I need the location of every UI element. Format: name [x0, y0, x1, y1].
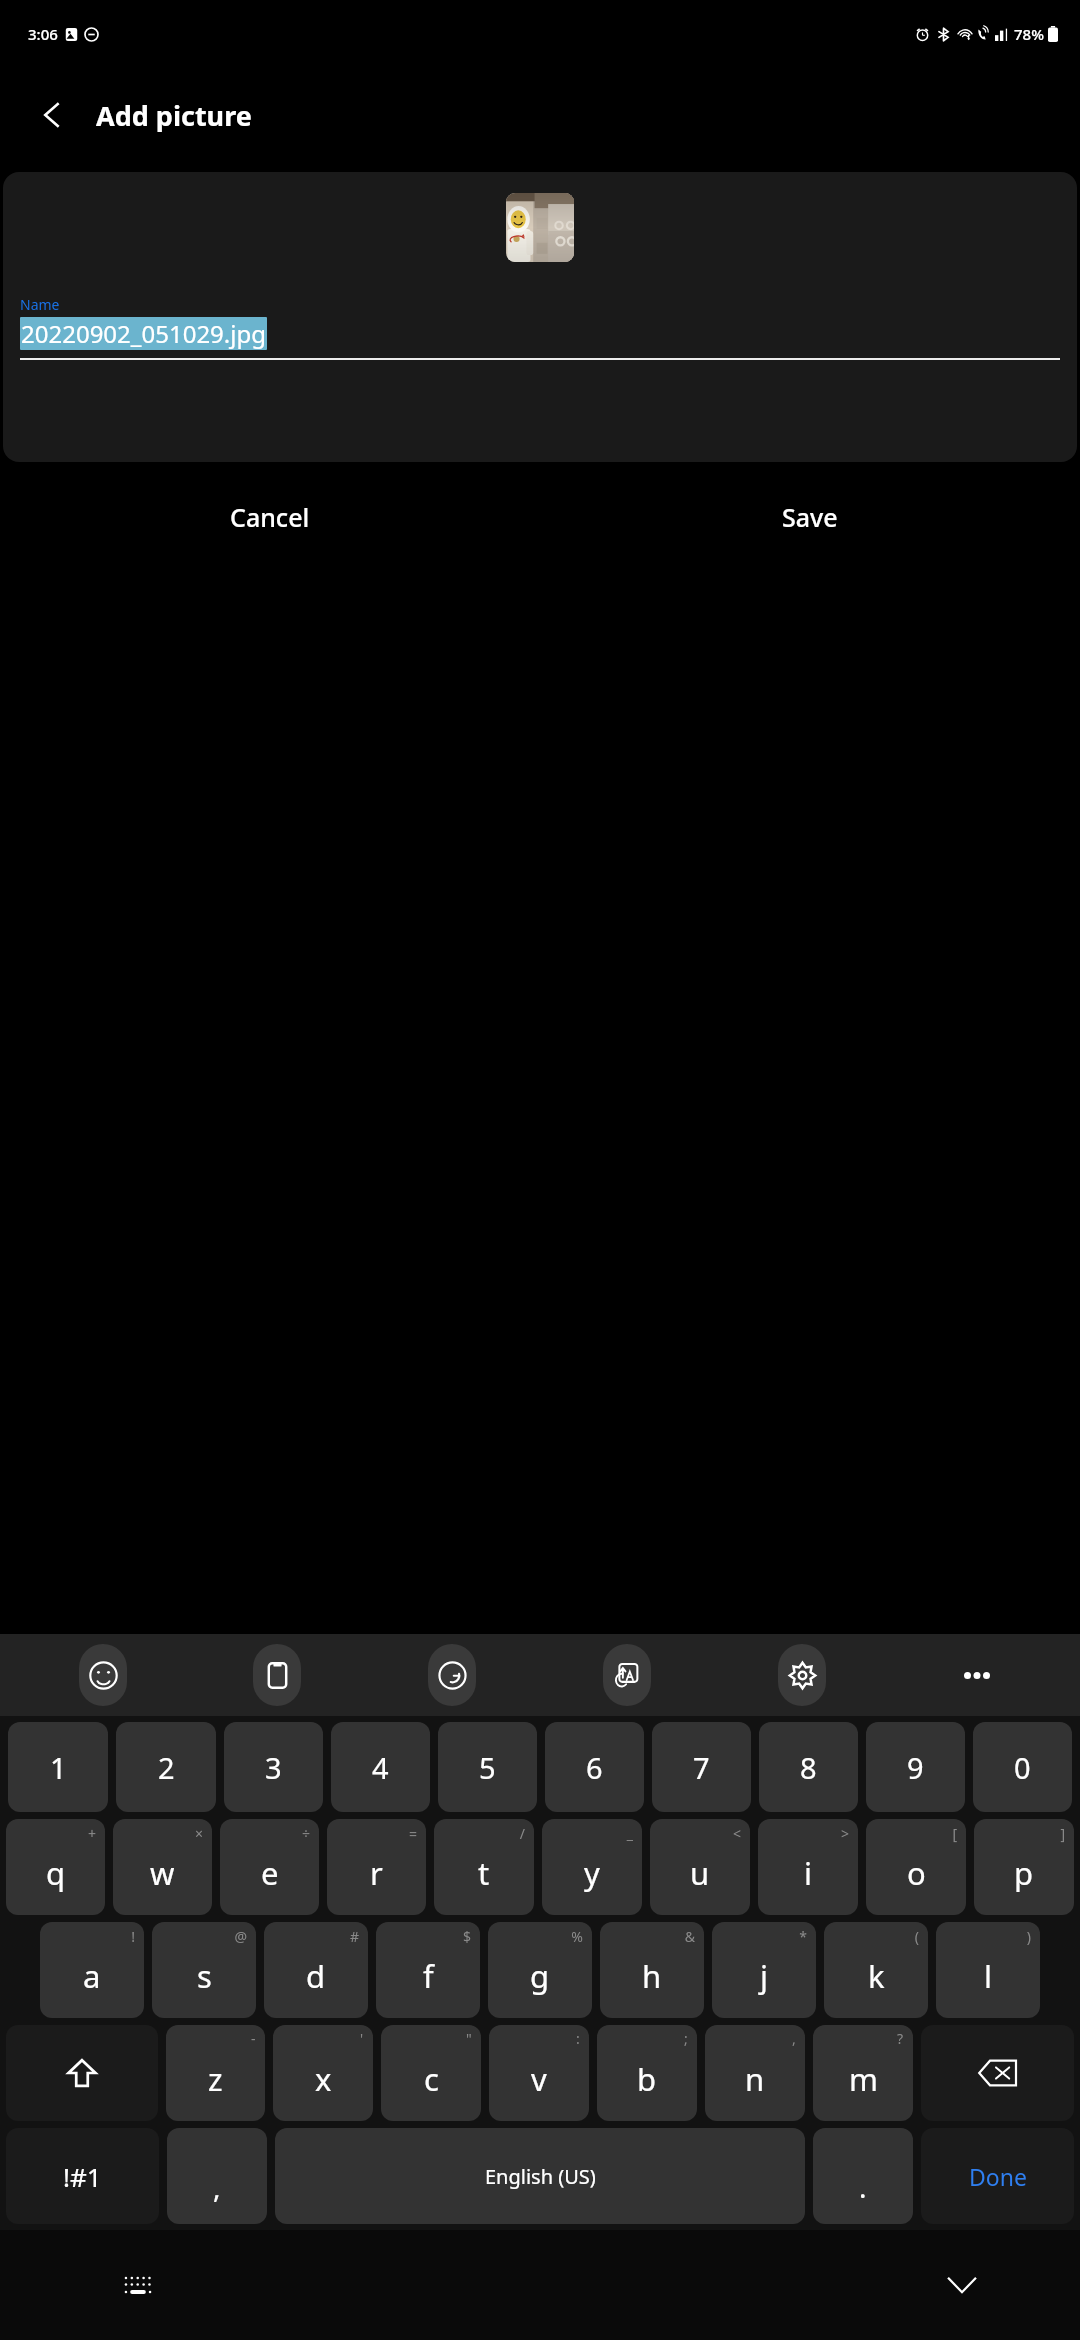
button[interactable]: Change keyboard: [108, 2255, 168, 2315]
button[interactable]: (: [824, 1922, 928, 2018]
button[interactable]: Done: [921, 2128, 1074, 2224]
staticText: ;: [684, 2029, 688, 2048]
staticText: 5: [479, 1748, 496, 1787]
staticText: p: [1014, 1852, 1034, 1894]
button[interactable]: ": [381, 2025, 481, 2121]
button[interactable]: 3: [224, 1722, 323, 1812]
staticText: Add picture: [96, 97, 252, 134]
staticText: !#1: [63, 2159, 102, 2194]
staticText: Name: [20, 295, 60, 314]
button[interactable]: 0: [973, 1722, 1072, 1812]
staticText: e: [261, 1852, 279, 1894]
button[interactable]: 5: [438, 1722, 537, 1812]
staticText: ,: [792, 2029, 796, 2048]
button[interactable]: Clipboard: [190, 1634, 364, 1716]
staticText: ?: [897, 2029, 904, 2048]
staticText: d: [306, 1955, 326, 1997]
staticText: g: [530, 1955, 550, 1997]
staticText: 6: [586, 1748, 603, 1787]
button[interactable]: 9: [866, 1722, 965, 1812]
button[interactable]: 6: [545, 1722, 644, 1812]
button[interactable]: [: [866, 1819, 966, 1915]
staticText: 4: [372, 1748, 389, 1787]
button[interactable]: >: [758, 1819, 858, 1915]
button[interactable]: !: [40, 1922, 144, 2018]
button[interactable]: ': [273, 2025, 373, 2121]
button[interactable]: ?: [813, 2025, 913, 2121]
button[interactable]: ]: [974, 1819, 1074, 1915]
staticText: a: [83, 1955, 101, 1997]
button[interactable]: @: [152, 1922, 256, 2018]
button[interactable]: ,: [705, 2025, 805, 2121]
staticText: w: [150, 1852, 175, 1894]
button[interactable]: Grammarly: [364, 1634, 539, 1716]
button[interactable]: 7: [652, 1722, 751, 1812]
button[interactable]: :: [489, 2025, 589, 2121]
button[interactable]: ÷: [220, 1819, 319, 1915]
staticText: >: [840, 1824, 849, 1843]
button[interactable]: !#1: [6, 2128, 159, 2224]
staticText: -: [251, 2029, 256, 2048]
staticText: n: [745, 2058, 765, 2100]
button[interactable]: Backspace: [921, 2025, 1074, 2121]
staticText: #: [349, 1927, 359, 1946]
staticText: !: [131, 1927, 135, 1946]
button[interactable]: <: [650, 1819, 750, 1915]
button[interactable]: +: [6, 1819, 105, 1915]
button[interactable]: 1: [8, 1722, 108, 1812]
button[interactable]: =: [327, 1819, 426, 1915]
staticText: b: [637, 2058, 657, 2100]
staticText: x: [315, 2058, 332, 2100]
button[interactable]: 2: [116, 1722, 216, 1812]
staticText: 7: [693, 1748, 710, 1787]
staticText: +: [87, 1824, 96, 1843]
button[interactable]: &: [600, 1922, 704, 2018]
staticText: ]: [1060, 1824, 1065, 1843]
staticText: *: [799, 1927, 807, 1946]
staticText: _: [626, 1824, 633, 1843]
button[interactable]: %: [488, 1922, 592, 2018]
button[interactable]: ,: [167, 2128, 267, 2224]
button[interactable]: _: [542, 1819, 642, 1915]
staticText: (: [914, 1927, 919, 1946]
staticText: k: [868, 1955, 885, 1997]
button[interactable]: English (US): [275, 2128, 805, 2224]
button[interactable]: Save: [540, 462, 1080, 572]
button[interactable]: Emoji: [16, 1634, 190, 1716]
button[interactable]: Cancel: [0, 462, 540, 572]
button[interactable]: ;: [597, 2025, 697, 2121]
staticText: i: [804, 1852, 812, 1894]
button[interactable]: Shift: [6, 2025, 158, 2121]
staticText: z: [208, 2058, 223, 2100]
staticText: h: [642, 1955, 662, 1997]
staticText: 3:06: [28, 24, 58, 44]
button[interactable]: *: [712, 1922, 816, 2018]
button[interactable]: ): [936, 1922, 1040, 2018]
button[interactable]: ×: [113, 1819, 212, 1915]
button[interactable]: Back: [22, 85, 82, 145]
staticText: Done: [969, 2161, 1027, 2192]
staticText: t: [478, 1852, 490, 1894]
button[interactable]: $: [376, 1922, 480, 2018]
staticText: English (US): [485, 2163, 596, 2190]
staticText: f: [423, 1955, 434, 1997]
button[interactable]: #: [264, 1922, 368, 2018]
button[interactable]: Hide keyboard: [932, 2255, 992, 2315]
button[interactable]: Selected picture: [506, 193, 574, 262]
button[interactable]: Translate: [539, 1634, 714, 1716]
staticText: y: [584, 1852, 600, 1894]
button[interactable]: 8: [759, 1722, 858, 1812]
staticText: .: [859, 2168, 867, 2206]
staticText: [: [952, 1824, 957, 1843]
staticText: ×: [194, 1824, 203, 1843]
staticText: %: [571, 1927, 583, 1946]
staticText: ": [466, 2029, 472, 2048]
staticText: m: [849, 2058, 878, 2100]
button[interactable]: 4: [331, 1722, 430, 1812]
button[interactable]: Keyboard settings: [714, 1634, 889, 1716]
button[interactable]: .: [813, 2128, 913, 2224]
staticText: 9: [907, 1748, 924, 1787]
button[interactable]: More options: [889, 1634, 1064, 1716]
button[interactable]: -: [166, 2025, 265, 2121]
button[interactable]: /: [434, 1819, 534, 1915]
